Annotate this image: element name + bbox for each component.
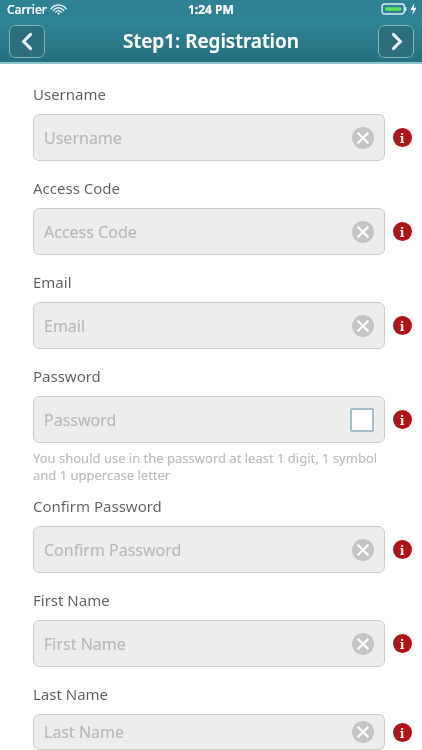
staticText: Confirm Password [44,539,352,561]
button[interactable]: Back [9,25,45,58]
button[interactable]: Clear text [352,315,374,337]
staticText: i [400,542,405,558]
button[interactable]: More information [393,634,412,653]
staticText: i [400,636,405,652]
button[interactable]: More information [393,128,412,147]
button[interactable]: More information [393,410,412,429]
button[interactable]: Username [33,114,385,161]
button[interactable]: Confirm Password [33,526,385,573]
staticText: Email [44,315,352,337]
button[interactable]: Show password [350,408,374,432]
staticText: 1:24 PM [188,1,234,17]
staticText: Access Code [33,178,120,198]
button[interactable]: Clear text [352,539,374,561]
button[interactable]: More information [393,540,412,559]
staticText: Password [44,409,350,431]
staticText: Last Name [33,684,109,704]
button[interactable]: More information [393,222,412,241]
button[interactable]: Access Code [33,208,385,255]
button[interactable]: Email [33,302,385,349]
button[interactable]: Last Name [33,714,385,750]
button[interactable]: Clear text [352,633,374,655]
staticText: Step1: Registration [123,28,299,54]
button[interactable]: Next [378,25,414,58]
button[interactable]: Clear text [352,721,374,743]
staticText: Access Code [44,221,352,243]
staticText: First Name [44,633,352,655]
staticText: Username [44,127,352,149]
staticText: Carrier [7,1,47,17]
button[interactable]: Clear text [352,221,374,243]
button[interactable]: More information [393,316,412,335]
staticText: i [400,224,405,240]
staticText: Confirm Password [33,496,162,516]
staticText: You should use in the password at least … [33,449,385,484]
staticText: i [400,318,405,334]
staticText: First Name [33,590,110,610]
staticText: Username [33,84,106,104]
staticText: i [400,412,405,428]
button[interactable]: Clear text [352,127,374,149]
button[interactable]: Password [33,396,385,443]
button[interactable]: First Name [33,620,385,667]
staticText: Last Name [44,721,352,743]
staticText: i [400,130,405,146]
button[interactable]: More information [393,723,412,742]
staticText: Email [33,272,72,292]
staticText: i [400,725,405,741]
staticText: Password [33,366,101,386]
